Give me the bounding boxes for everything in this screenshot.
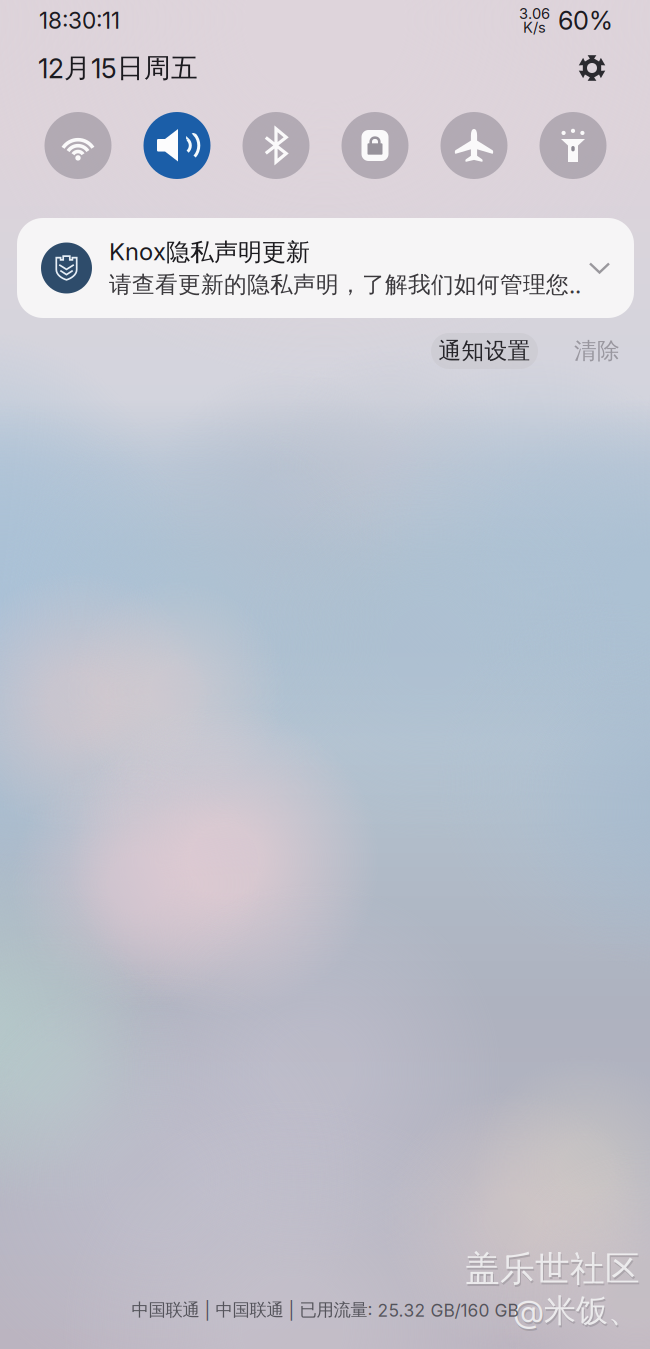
staticText: K/s [523,18,546,36]
staticText: 18:30:11 [39,7,120,34]
button[interactable]: Knox隐私声明更新 [17,218,634,318]
staticText: Knox隐私声明更新 [109,237,310,267]
button[interactable]: Airplane mode [440,112,507,179]
staticText: @米饭、 [514,1293,641,1333]
staticText: 12月15日周五 [38,51,198,85]
staticText: 通知设置 [438,337,530,365]
staticText: 3.06 [519,5,550,22]
staticText: 中国联通 | 中国联通 | 已用流量: 25.32 GB/160 GB [131,1299,518,1321]
staticText: 盖乐世社区 [465,1247,640,1291]
button[interactable]: 清除 [559,333,635,369]
staticText: 60% [558,5,613,36]
button[interactable]: Sound [143,112,210,179]
button[interactable]: Screen rotation lock [341,112,408,179]
button[interactable]: Flashlight [539,112,606,179]
button[interactable]: Wi-Fi [44,112,111,179]
button[interactable]: 通知设置 [431,333,538,369]
button[interactable]: Settings [570,46,614,90]
staticText: 请查看更新的隐私声明，了解我们如何管理您.. [109,270,581,299]
staticText: 清除 [574,337,620,365]
staticText: 盖乐世社区 [466,1249,641,1293]
button[interactable]: Bluetooth [242,112,309,179]
staticText: @米饭、 [513,1291,640,1331]
